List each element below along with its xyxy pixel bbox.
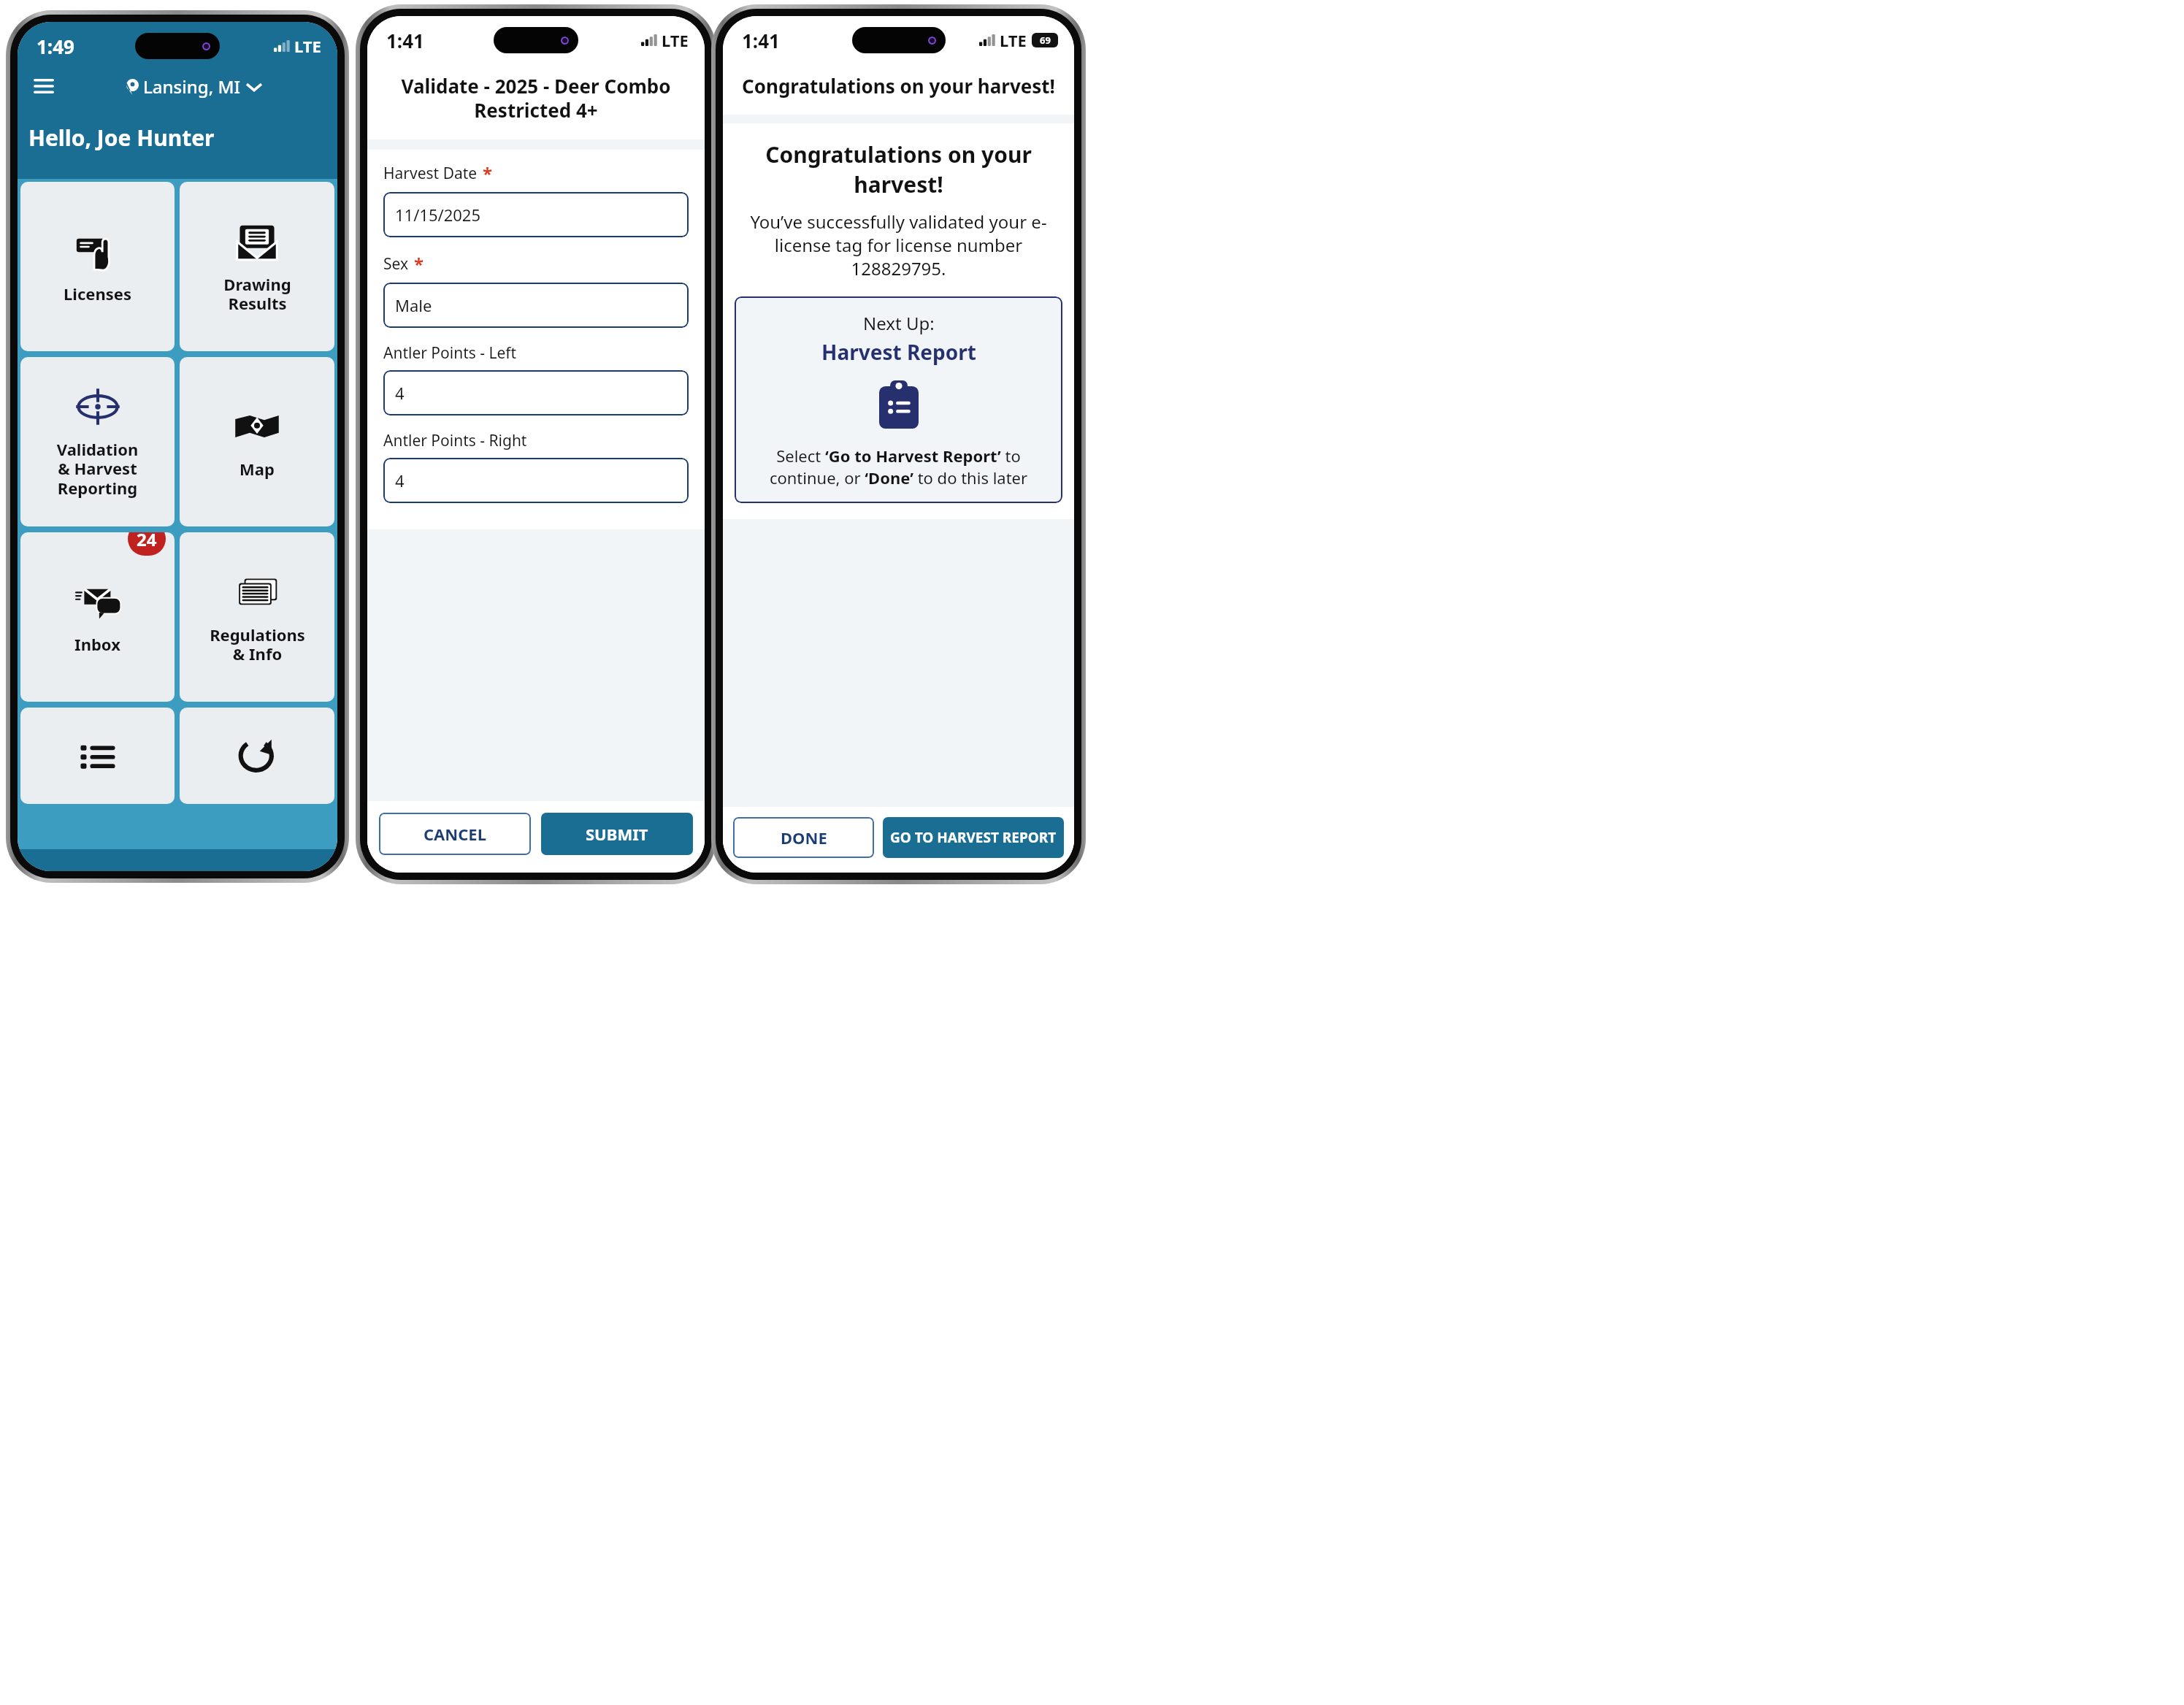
staticText: Inbox [74,633,120,655]
staticText: Sex [383,253,409,275]
staticText: Lansing, MI [143,74,240,99]
staticText: Antler Points - Left [383,342,517,364]
staticText: LTE [1000,29,1027,51]
button[interactable]: GO TO HARVEST REPORT [883,817,1064,858]
button[interactable]: Lansing, MI [122,72,266,101]
staticText: Validate - 2025 - Deer Combo Restricted … [376,73,696,123]
staticText: Hello, Joe Hunter [28,123,215,153]
staticText: LTE [662,29,689,51]
button[interactable] [180,708,334,804]
staticText: 11/15/2025 [395,204,481,226]
staticText: Congratulations on your harvest! [730,73,1067,99]
staticText: * [483,161,493,185]
staticText: Male [395,294,432,316]
button[interactable]: CANCEL [379,813,531,855]
button[interactable]: 4 [383,370,689,415]
staticText: * [414,252,424,276]
button[interactable]: Regulations & Info [180,532,334,702]
staticText: CANCEL [424,823,486,845]
button[interactable]: Validation & Harvest Reporting [20,357,175,526]
staticText: 69 [1040,34,1051,47]
staticText: Map [240,458,275,480]
staticText: Validation & Harvest Reporting [28,438,167,499]
staticText: SUBMIT [586,823,648,845]
staticText: Next Up: [863,311,935,335]
button[interactable]: Menu [28,70,60,102]
staticText: 4 [395,470,405,491]
staticText: LTE [294,35,321,57]
staticText: Harvest Date [383,163,478,184]
button[interactable]: SUBMIT [541,813,693,855]
staticText: Congratulations on your harvest! [735,139,1062,199]
button[interactable]: 4 [383,458,689,503]
staticText: 1:49 [37,34,74,59]
staticText: You’ve successfully validated your e-lic… [735,210,1062,280]
staticText: GO TO HARVEST REPORT [890,828,1057,847]
staticText: Regulations & Info [210,624,305,665]
button[interactable] [20,708,175,804]
staticText: 4 [395,382,405,404]
staticText: 1:41 [386,28,424,53]
staticText: 24 [137,532,157,551]
staticText: 1:41 [742,28,780,53]
staticText: Harvest Report [821,338,976,366]
staticText: Antler Points - Right [383,430,527,451]
button[interactable]: Drawing Results [180,182,334,351]
button[interactable]: Inbox [20,532,175,702]
button[interactable]: DONE [733,817,874,858]
button[interactable]: Male [383,283,689,328]
button[interactable]: 11/15/2025 [383,192,689,237]
staticText: Drawing Results [223,273,291,315]
staticText: Select ‘Go to Harvest Report’ to continu… [745,445,1052,488]
button[interactable]: Next Up: [735,296,1062,503]
staticText: DONE [781,827,827,848]
button[interactable]: Licenses [20,182,175,351]
staticText: Licenses [64,283,131,304]
button[interactable]: Map [180,357,334,526]
